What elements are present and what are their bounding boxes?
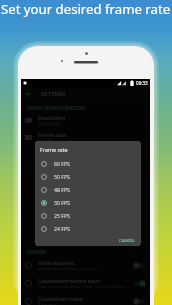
staticText: 60 FPS	[54, 160, 70, 167]
button[interactable]: Countdown value	[21, 292, 150, 305]
staticText: SETTING	[41, 90, 66, 98]
button[interactable]: 30 FPS	[35, 196, 141, 209]
button[interactable]: Frame rate	[21, 129, 150, 145]
button[interactable]: Resolution	[21, 112, 150, 128]
staticText: Enable visual touches on screen	[38, 266, 98, 271]
button[interactable]: 25 FPS	[35, 209, 141, 222]
staticText: Resolution	[38, 114, 66, 121]
button[interactable]: Back	[24, 89, 34, 99]
staticText: 3 seconds	[38, 302, 57, 305]
button[interactable]: Show touches	[21, 256, 150, 274]
staticText: 1920x1080	[38, 121, 61, 127]
staticText: 30 FPS	[38, 138, 52, 144]
button[interactable]: 60 FPS	[35, 157, 141, 170]
button[interactable]: Countdown before start	[133, 279, 146, 288]
button[interactable]: 50 FPS	[35, 170, 141, 183]
staticText: Countdown before start	[38, 277, 100, 284]
staticText: Show touches	[38, 259, 74, 266]
button[interactable]: Countdown value	[133, 297, 146, 305]
button[interactable]: CANCEL	[113, 236, 141, 246]
staticText: Frame rate	[38, 131, 67, 138]
button[interactable]: Countdown before start	[21, 274, 150, 292]
staticText: Have countdown before start screen recor…	[38, 284, 126, 289]
staticText: OTHERS	[27, 249, 47, 256]
staticText: Countdown value	[38, 295, 84, 302]
button[interactable]: 24 FPS	[35, 222, 141, 235]
staticText: Set your desired frame rate	[1, 0, 171, 18]
staticText: 30 FPS	[54, 199, 70, 206]
button[interactable]: 48 FPS	[35, 183, 141, 196]
staticText: VIDEO CONFIGURATION	[27, 105, 85, 112]
staticText: 24 FPS	[54, 225, 70, 232]
staticText: Frame rate	[40, 146, 68, 153]
staticText: 50 FPS	[54, 173, 70, 180]
staticText: 48 FPS	[54, 186, 70, 193]
button[interactable]: Show touches	[133, 261, 146, 270]
staticText: CANCEL	[119, 238, 135, 244]
staticText: 09:33	[136, 80, 148, 86]
staticText: 25 FPS	[54, 212, 70, 219]
